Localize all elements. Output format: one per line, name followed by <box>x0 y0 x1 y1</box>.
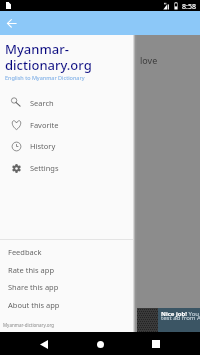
staticText: Favorite <box>30 120 59 130</box>
staticText: English to Myanmar Dictionary <box>5 74 85 81</box>
staticText: Myanmar-dictionary.org <box>3 322 55 328</box>
staticText: 8:58 <box>182 2 196 12</box>
staticText: Rate this app <box>8 265 55 275</box>
staticText: test ad from A <box>161 314 200 322</box>
button[interactable]: History <box>0 135 133 157</box>
button[interactable]: Feedback <box>0 243 133 261</box>
staticText: love <box>140 54 158 66</box>
staticText: You <box>187 310 199 318</box>
staticText: Myanmar- dictionary.org <box>5 40 92 74</box>
staticText: Settings <box>30 163 59 173</box>
staticText: Nice job! <box>161 310 187 318</box>
button[interactable]: Home <box>90 334 110 354</box>
button[interactable]: Recents <box>146 334 166 354</box>
button[interactable]: Back <box>3 15 19 31</box>
button[interactable]: Search <box>0 92 133 114</box>
staticText: About this app <box>8 300 60 310</box>
button[interactable]: About this app <box>0 296 133 314</box>
button[interactable]: Settings <box>0 157 133 179</box>
button[interactable]: Share this app <box>0 278 133 296</box>
staticText: Feedback <box>8 247 42 257</box>
staticText: History <box>30 141 56 151</box>
button[interactable]: Nice job! <box>133 308 200 332</box>
staticText: Share this app <box>8 282 59 292</box>
button[interactable]: Back <box>34 334 54 354</box>
button[interactable]: Favorite <box>0 114 133 136</box>
staticText: Search <box>30 98 54 108</box>
button[interactable]: Rate this app <box>0 261 133 279</box>
